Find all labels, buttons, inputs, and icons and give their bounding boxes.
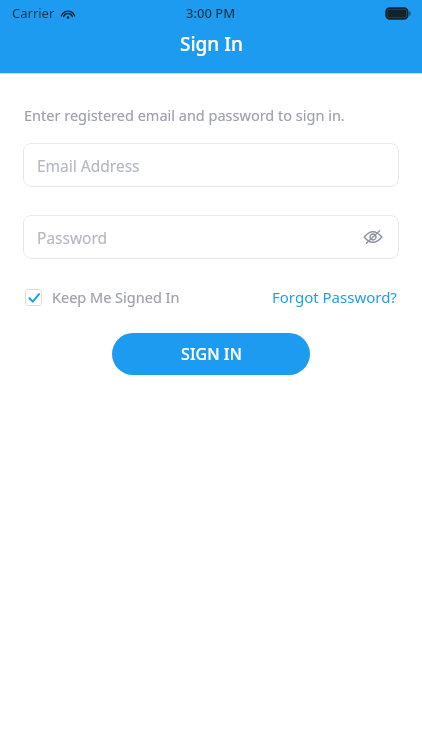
button[interactable]: Show password <box>359 223 387 251</box>
staticText: Password <box>37 227 108 248</box>
button[interactable]: Password <box>23 215 399 259</box>
staticText: Keep Me Signed In <box>52 287 180 307</box>
button[interactable]: Forgot Password? <box>270 281 399 313</box>
staticText: Carrier <box>12 4 55 22</box>
button[interactable]: Keep Me Signed In <box>23 281 182 313</box>
staticText: Enter registered email and password to s… <box>24 105 345 125</box>
button[interactable]: SIGN IN <box>112 333 310 375</box>
staticText: Sign In <box>180 31 243 57</box>
staticText: SIGN IN <box>181 343 242 365</box>
staticText: Forgot Password? <box>272 287 397 307</box>
staticText: 3:00 PM <box>186 4 236 22</box>
staticText: Email Address <box>37 155 140 176</box>
button[interactable]: Email Address <box>23 143 399 187</box>
